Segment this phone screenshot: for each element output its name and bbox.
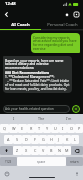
- button[interactable]: N: [55, 146, 63, 155]
- button[interactable]: Backspace: [71, 146, 83, 155]
- staticText: space: [37, 160, 46, 164]
- staticText: L: [74, 137, 76, 142]
- button[interactable]: C: [31, 146, 39, 155]
- button[interactable]: AI Coach: [0, 20, 41, 29]
- staticText: Y: [46, 126, 49, 131]
- button[interactable]: D: [22, 135, 31, 144]
- button[interactable]: O: [67, 124, 75, 133]
- staticText: W: [12, 126, 16, 131]
- button[interactable]: K: [63, 135, 71, 144]
- button[interactable]: A: [4, 135, 13, 144]
- button[interactable]: Ask your health-related question: [3, 105, 70, 113]
- staticText: Personal Coach: [47, 22, 78, 28]
- button[interactable]: Voice input: [73, 170, 80, 177]
- button[interactable]: G: [39, 135, 47, 144]
- staticText: 12:48: [5, 1, 16, 7]
- staticText: I: [13, 116, 15, 121]
- button[interactable]: H: [47, 135, 55, 144]
- button[interactable]: return: [66, 157, 83, 166]
- staticText: P: [78, 126, 81, 131]
- staticText: ### Diet Recommendations: [5, 71, 50, 75]
- button[interactable]: The: [27, 114, 55, 123]
- button[interactable]: Based on your reports, here are some tai…: [3, 56, 72, 93]
- staticText: ?123: [5, 160, 12, 164]
- button[interactable]: Z: [13, 146, 22, 155]
- button[interactable]: B: [47, 146, 55, 155]
- button[interactable]: Personal Coach: [41, 20, 83, 29]
- staticText: J: [58, 137, 60, 142]
- button[interactable]: X: [22, 146, 31, 155]
- button[interactable]: P: [75, 124, 83, 133]
- button[interactable]: M: [63, 146, 71, 155]
- staticText: V: [42, 148, 45, 153]
- button[interactable]: V: [39, 146, 47, 155]
- button[interactable]: I: [0, 114, 27, 123]
- button[interactable]: Considering my reports, what advice woul…: [31, 33, 80, 53]
- staticText: O: [70, 126, 73, 131]
- button[interactable]: E: [18, 124, 27, 133]
- staticText: return: [70, 160, 79, 164]
- button[interactable]: S: [13, 135, 22, 144]
- staticText: Q: [3, 126, 6, 131]
- button[interactable]: Send: [72, 105, 80, 113]
- button[interactable]: W: [9, 124, 18, 133]
- button[interactable]: Profile: [72, 10, 81, 19]
- button[interactable]: F: [31, 135, 39, 144]
- button[interactable]: Y: [43, 124, 51, 133]
- staticText: I: [62, 126, 64, 131]
- button[interactable]: Back: [2, 10, 11, 19]
- button[interactable]: Q: [0, 124, 9, 133]
- button[interactable]: I'm: [55, 114, 83, 123]
- staticText: R: [30, 126, 33, 131]
- staticText: T: [38, 126, 41, 131]
- button[interactable]: space: [17, 157, 66, 166]
- button[interactable]: I: [59, 124, 67, 133]
- staticText: E: [21, 126, 24, 131]
- button[interactable]: Shift: [0, 146, 13, 155]
- button[interactable]: L: [71, 135, 79, 144]
- button[interactable]: Emoji: [3, 170, 10, 177]
- staticText: G: [42, 137, 45, 142]
- staticText: C: [34, 148, 37, 153]
- button[interactable]: U: [51, 124, 59, 133]
- staticText: A: [7, 137, 10, 142]
- button[interactable]: ?123: [0, 157, 17, 166]
- button[interactable]: J: [55, 135, 63, 144]
- staticText: - **Reduce Saturated Fats**: Limit intak…: [5, 79, 70, 91]
- staticText: Ask your health-related question: [5, 107, 54, 111]
- staticText: 1. **Cholesterol Management**:: [5, 75, 55, 79]
- staticText: D: [25, 137, 28, 142]
- staticText: U: [54, 126, 57, 131]
- staticText: I'm: [66, 116, 72, 121]
- button[interactable]: R: [27, 124, 35, 133]
- staticText: Based on your reports, here are some tai…: [5, 58, 70, 70]
- staticText: N: [58, 148, 61, 153]
- button[interactable]: T: [35, 124, 43, 133]
- staticText: S: [16, 137, 19, 142]
- staticText: F: [34, 137, 36, 142]
- staticText: Z: [16, 148, 19, 153]
- staticText: AI Coach: [11, 22, 30, 28]
- button[interactable]: Notifications: [62, 10, 71, 19]
- staticText: H: [50, 137, 53, 142]
- staticText: X: [25, 148, 28, 153]
- staticText: The: [38, 116, 45, 121]
- staticText: M: [65, 148, 69, 153]
- staticText: Considering my reports, what advice woul…: [33, 35, 78, 51]
- staticText: B: [50, 148, 53, 153]
- staticText: K: [66, 137, 69, 142]
